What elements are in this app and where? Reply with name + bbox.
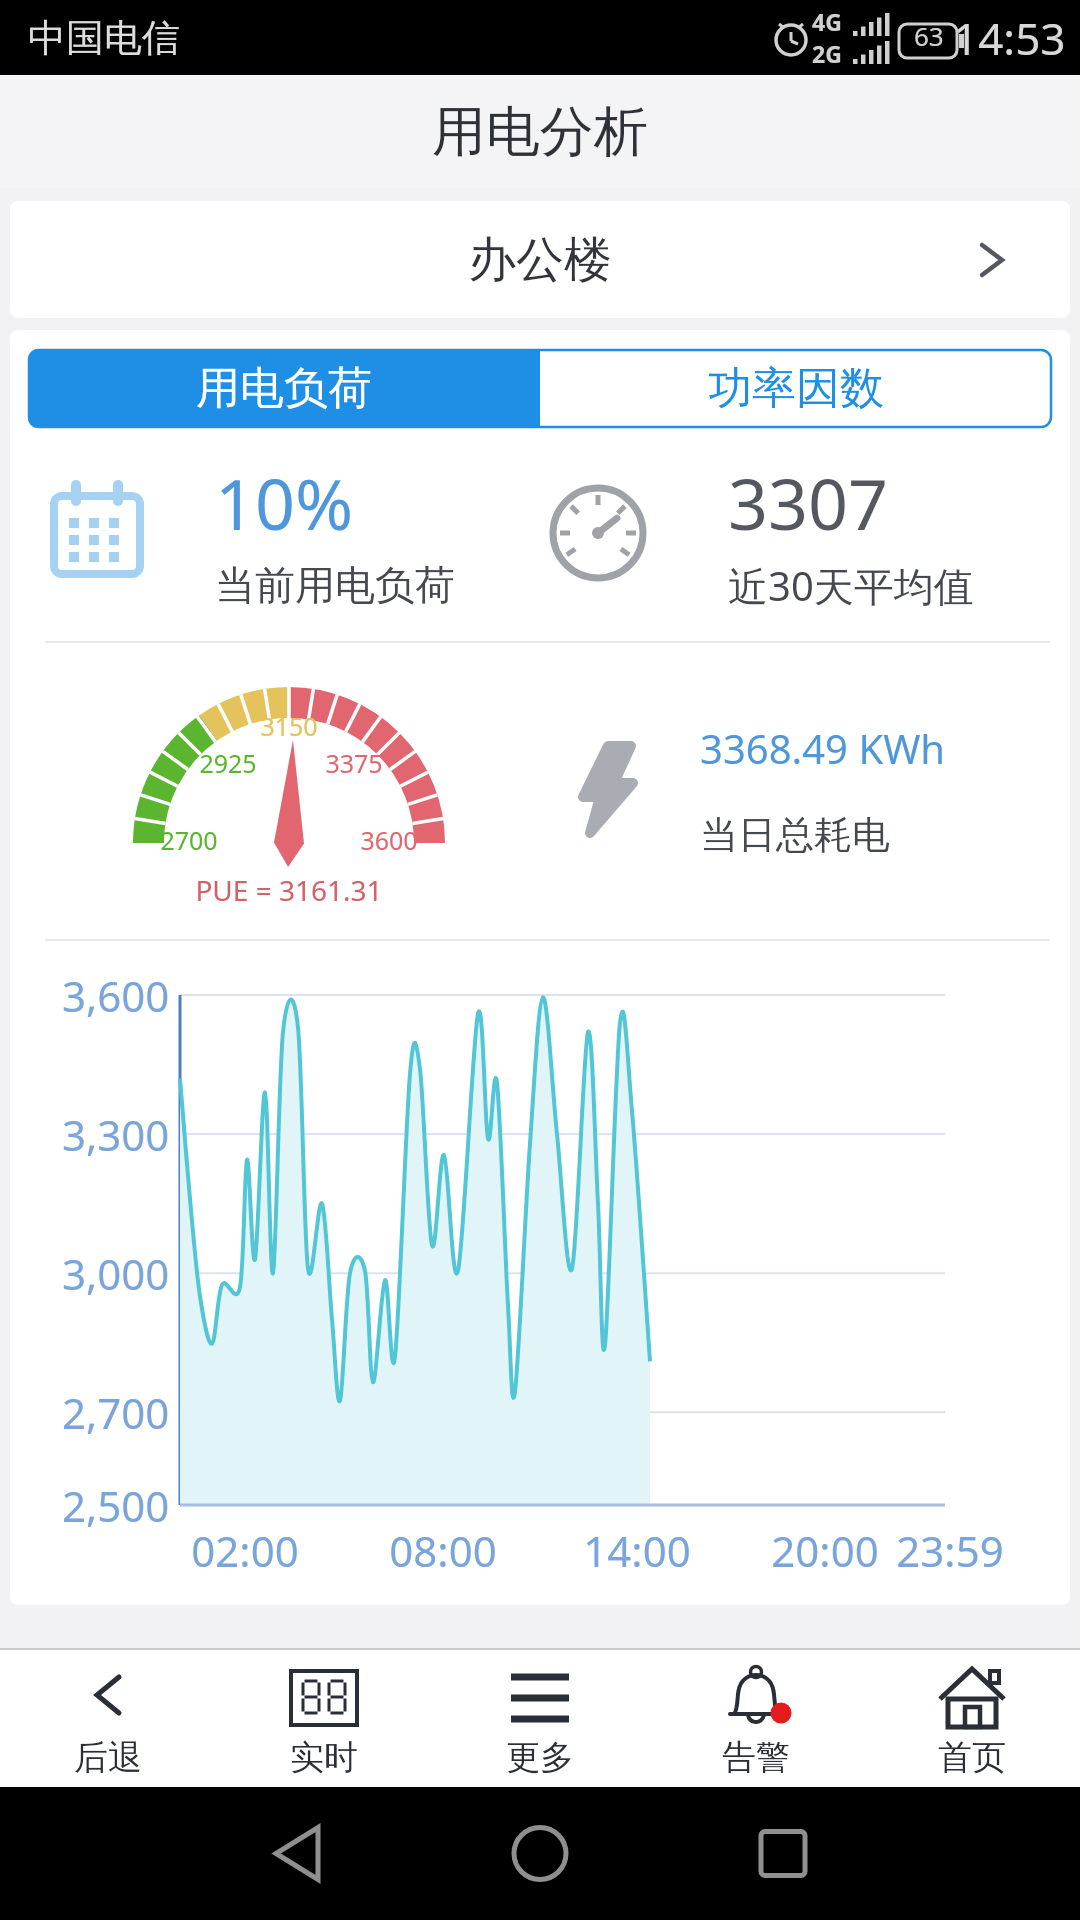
staticText: 08:00 bbox=[389, 1522, 497, 1579]
staticText: 后退 bbox=[74, 1736, 142, 1779]
staticText: 3,300 bbox=[62, 1106, 170, 1163]
staticText: 2925 bbox=[199, 746, 257, 780]
staticText: 3375 bbox=[325, 746, 383, 780]
staticText: 2G bbox=[812, 38, 842, 69]
button[interactable]: 办公楼 bbox=[10, 201, 1070, 318]
button[interactable]: 更多 bbox=[432, 1648, 648, 1787]
staticText: 3150 bbox=[260, 709, 318, 743]
button[interactable]: 用电负荷 bbox=[28, 349, 540, 428]
staticText: 23:59 bbox=[896, 1522, 1004, 1579]
staticText: 用电分析 bbox=[432, 98, 648, 166]
staticText: 2,500 bbox=[62, 1477, 170, 1534]
staticText: 02:00 bbox=[191, 1522, 299, 1579]
staticText: 20:00 bbox=[771, 1522, 879, 1579]
staticText: 首页 bbox=[938, 1736, 1006, 1779]
staticText: 当日总耗电 bbox=[700, 811, 890, 859]
staticText: 3600 bbox=[360, 823, 418, 857]
button[interactable]: 功率因数 bbox=[540, 349, 1052, 428]
staticText: 3,600 bbox=[62, 967, 170, 1024]
staticText: 2,700 bbox=[62, 1384, 170, 1441]
staticText: 近30天平均值 bbox=[728, 558, 974, 613]
staticText: 告警 bbox=[722, 1736, 790, 1779]
staticText: 实时 bbox=[290, 1736, 358, 1779]
staticText: PUE = 3161.31 bbox=[195, 871, 383, 909]
button[interactable]: 首页 bbox=[864, 1648, 1080, 1787]
staticText: 14:00 bbox=[583, 1522, 691, 1579]
staticText: 4G bbox=[812, 6, 842, 37]
staticText: 2700 bbox=[160, 823, 218, 857]
button[interactable]: 告警 bbox=[648, 1648, 864, 1787]
button[interactable]: 实时 bbox=[216, 1648, 432, 1787]
staticText: 当前用电负荷 bbox=[215, 560, 455, 610]
button[interactable]: 后退 bbox=[0, 1648, 216, 1787]
staticText: 办公楼 bbox=[468, 230, 612, 290]
staticText: 3368.49 KWh bbox=[700, 721, 946, 775]
staticText: 3307 bbox=[728, 455, 889, 550]
staticText: 63 bbox=[914, 18, 944, 53]
staticText: 中国电信 bbox=[28, 14, 180, 62]
staticText: 3,000 bbox=[62, 1245, 170, 1302]
staticText: 更多 bbox=[506, 1736, 574, 1779]
staticText: 用电负荷 bbox=[196, 361, 372, 416]
staticText: 14:53 bbox=[953, 8, 1066, 68]
staticText: 功率因数 bbox=[708, 361, 884, 416]
staticText: 10% bbox=[215, 455, 354, 550]
